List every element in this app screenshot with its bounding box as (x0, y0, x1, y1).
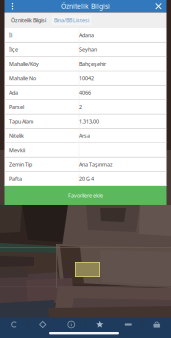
staticText: Zemin Tip (9, 161, 32, 168)
staticText: Adana (79, 32, 94, 39)
button[interactable]: Favorilere ekle (4, 186, 166, 205)
staticText: Parsel (9, 103, 24, 110)
staticText: Ada (9, 89, 18, 96)
staticText: Bahçeşehir (79, 60, 106, 67)
button[interactable]: Favorites (85, 317, 114, 331)
staticText: Pafta (9, 175, 22, 182)
button[interactable]: Close (150, 0, 166, 12)
staticText: Arsa (79, 132, 90, 139)
staticText: Mevkii (9, 146, 25, 154)
button[interactable]: Lock (142, 317, 171, 331)
staticText: 1.313,00 (79, 118, 99, 125)
staticText: 2 (79, 103, 82, 110)
staticText: İl (9, 32, 12, 39)
staticText: Öznitelik Bilgisi (11, 17, 46, 24)
staticText: Nitelik (9, 132, 24, 139)
button[interactable]: Bina/BB Listesi (51, 15, 91, 25)
button[interactable]: Information (57, 317, 85, 331)
button[interactable]: More options (4, 0, 20, 12)
staticText: Tapu Alanı (9, 118, 33, 125)
staticText: Bina/BB Listesi (54, 17, 89, 24)
button[interactable]: Measure (114, 317, 142, 331)
staticText: Favorilere ekle (68, 192, 103, 199)
staticText: Ana Taşınmaz (79, 161, 113, 168)
staticText: 4066 (79, 89, 91, 96)
staticText: 10042 (79, 75, 94, 82)
staticText: Mahalle/Köy (9, 60, 39, 67)
staticText: Seyhan (79, 46, 97, 53)
staticText: İlçe (9, 46, 18, 53)
button[interactable]: Refresh (0, 317, 28, 331)
staticText: Mahalle No (9, 75, 36, 82)
button[interactable]: Öznitelik Bilgisi (7, 12, 49, 28)
staticText: 20 G 4 (79, 175, 94, 182)
button[interactable]: Layers (28, 317, 57, 331)
staticText: Öznitelik Bilgisi (61, 2, 110, 11)
